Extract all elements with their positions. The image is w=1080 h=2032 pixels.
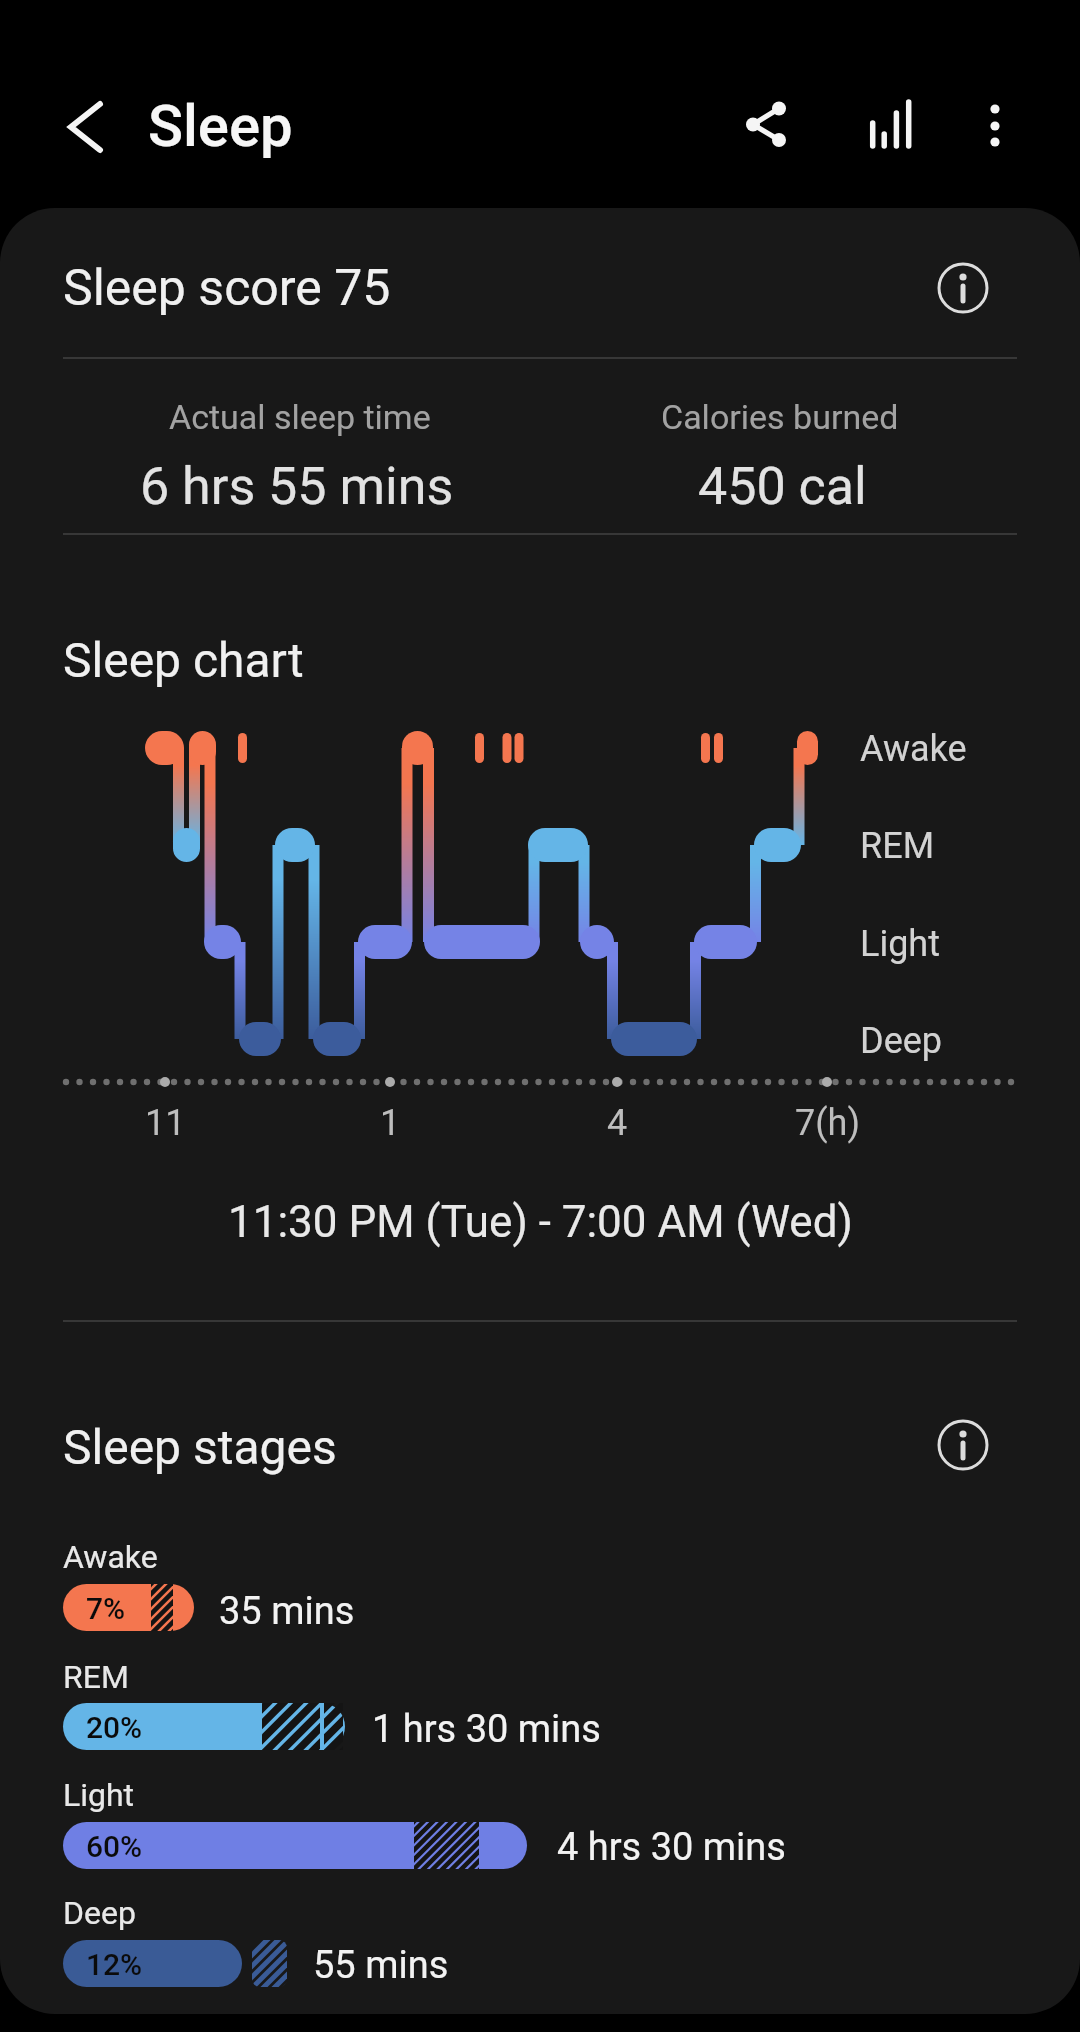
staticText: Calories burned <box>661 397 899 437</box>
staticText: 12% <box>86 1947 143 1982</box>
staticText: Sleep score 75 <box>63 259 391 318</box>
staticText: 55 mins <box>313 1943 449 1988</box>
staticText: 7% <box>86 1591 126 1626</box>
staticText: 450 cal <box>698 456 867 517</box>
staticText: 35 mins <box>219 1589 355 1634</box>
staticText: 1 hrs 30 mins <box>372 1707 601 1752</box>
staticText: Sleep <box>148 92 293 160</box>
staticText: Sleep chart <box>63 632 304 688</box>
staticText: Light <box>63 1776 135 1814</box>
staticText: 6 hrs 55 mins <box>140 456 454 517</box>
button[interactable] <box>932 1414 994 1476</box>
staticText: 11 <box>145 1102 186 1144</box>
staticText: Deep <box>860 1020 943 1062</box>
button[interactable] <box>932 257 994 319</box>
staticText: 7(h) <box>795 1102 860 1144</box>
staticText: REM <box>860 825 935 867</box>
button[interactable] <box>50 92 122 162</box>
staticText: Light <box>860 923 940 965</box>
staticText: Awake <box>860 728 967 770</box>
staticText: 4 <box>607 1102 628 1144</box>
staticText: 4 hrs 30 mins <box>557 1825 786 1870</box>
button[interactable] <box>962 92 1028 158</box>
staticText: 60% <box>86 1829 143 1864</box>
staticText: 1 <box>380 1102 401 1144</box>
button[interactable] <box>858 92 924 158</box>
staticText: 20% <box>86 1710 143 1745</box>
staticText: Deep <box>63 1894 136 1932</box>
staticText: Awake <box>63 1538 158 1576</box>
staticText: Actual sleep time <box>169 397 431 437</box>
staticText: REM <box>63 1658 129 1696</box>
button[interactable] <box>732 92 798 158</box>
staticText: 11:30 PM (Tue) - 7:00 AM (Wed) <box>228 1196 853 1248</box>
staticText: Sleep stages <box>63 1419 337 1475</box>
